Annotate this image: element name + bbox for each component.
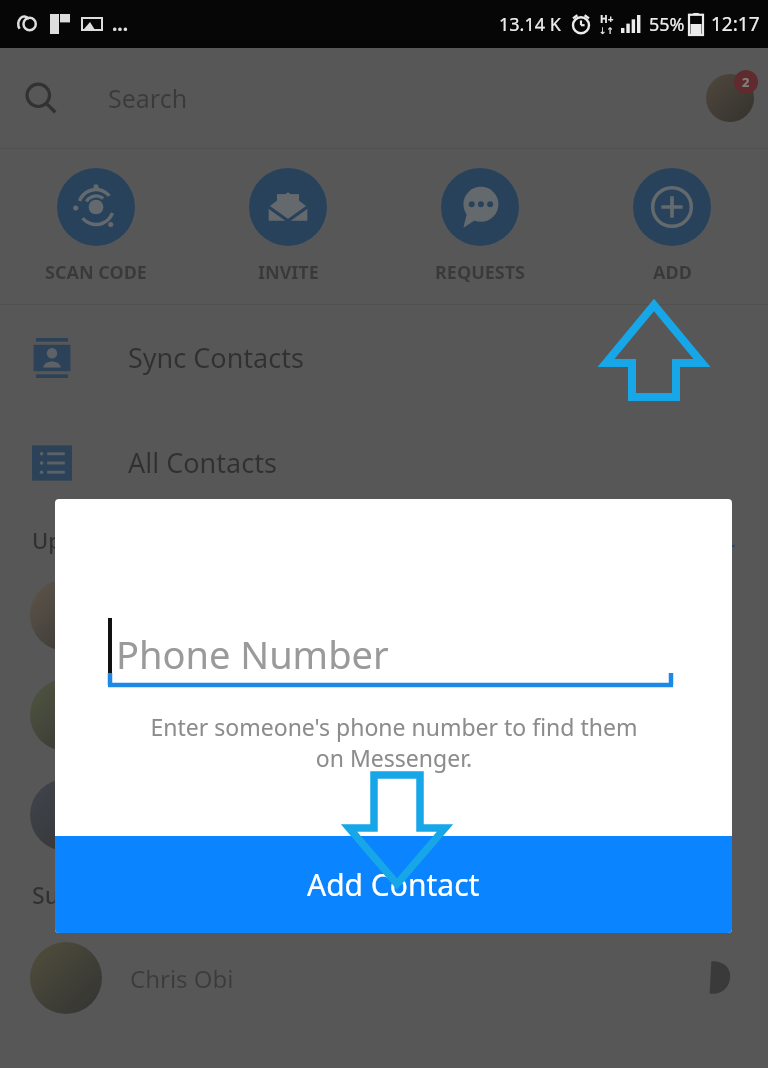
staticText: SEE ALL [668,528,736,553]
staticText: REQUESTS [435,260,526,285]
staticText: Phone Number [116,628,389,680]
staticText: SCAN CODE [45,260,147,285]
staticText: ↓↑ [599,26,615,36]
staticText: 55% [649,12,685,37]
staticText: 2 [742,73,750,91]
button[interactable]: Chris Obi [0,665,768,765]
button[interactable]: Chris Obi [0,565,768,665]
staticText: Sync Contacts [128,339,304,376]
staticText: Enter someone's phone number to find the… [134,711,654,774]
other: Search [24,81,58,115]
staticText: Add Contact [307,864,480,905]
staticText: Upcoming Birthdays [32,525,247,555]
button[interactable]: Phone Number [108,602,673,680]
staticText: Suggested People [32,879,230,910]
button[interactable]: Add Contact [55,836,732,933]
staticText: INVITE [258,260,319,285]
staticText: Chris Obi [130,962,234,995]
button[interactable]: All Contacts [0,410,768,515]
button[interactable]: Sync Contacts [0,305,768,410]
button[interactable]: INVITE [192,149,384,304]
button[interactable]: Chris Obi [0,765,768,865]
button[interactable]: Profile [706,74,754,122]
button[interactable]: REQUESTS [384,149,576,304]
staticText: Search [108,81,188,115]
button[interactable]: Search [0,48,768,148]
staticText: All Contacts [128,444,277,481]
staticText: Chris Obi [130,699,234,732]
staticText: ... [112,11,129,37]
staticText: H+ [600,12,614,26]
button[interactable]: ADD [576,149,768,304]
staticText: 13.14 K [499,12,561,37]
staticText: 12:17 [711,11,760,37]
button[interactable]: Chris Obi [0,928,768,1028]
staticText: ADD [653,260,692,285]
button[interactable]: SCAN CODE [0,149,192,304]
